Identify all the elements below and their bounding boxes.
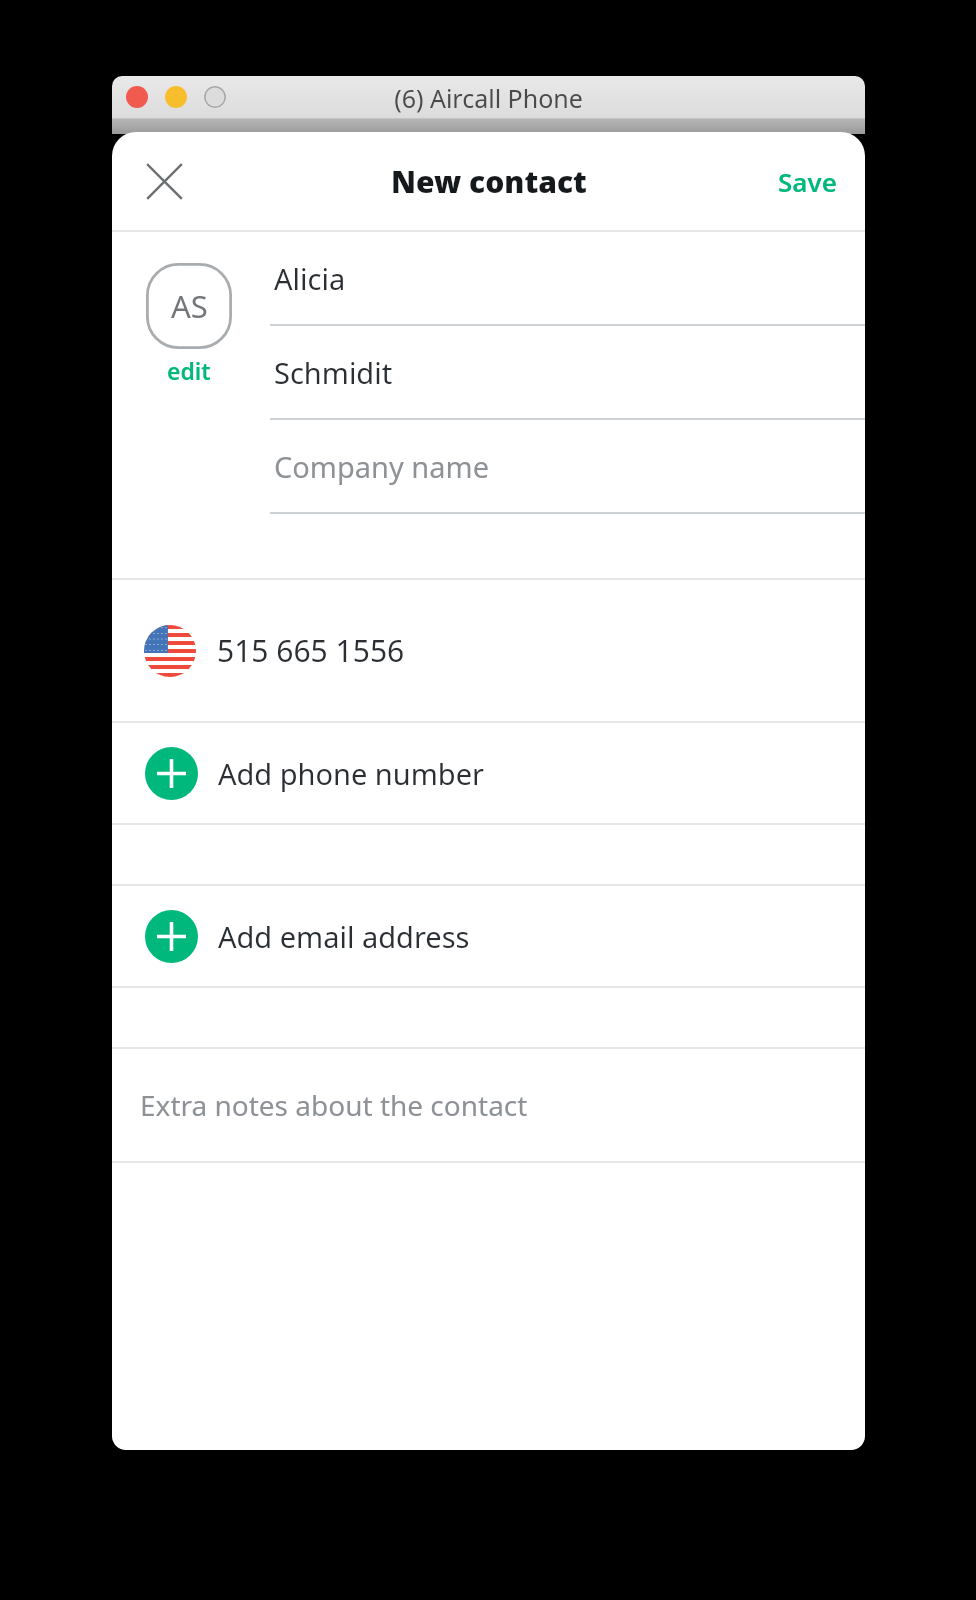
button[interactable]: Close window: [126, 86, 148, 108]
button[interactable]: Extra notes about the contact: [112, 1049, 865, 1161]
button[interactable]: Maximize window: [204, 86, 226, 108]
button[interactable]: 515 665 1556: [112, 580, 865, 721]
staticText: Add email address: [218, 917, 470, 956]
button[interactable]: Close: [136, 153, 192, 209]
staticText: Save: [778, 164, 837, 199]
button[interactable]: Add phone number: [112, 723, 865, 823]
button[interactable]: AS: [146, 263, 232, 386]
button[interactable]: Company name: [270, 420, 865, 514]
staticText: New contact: [391, 161, 587, 202]
button[interactable]: Alicia: [270, 232, 865, 326]
staticText: (6) Aircall Phone: [394, 81, 583, 115]
staticText: Company name: [274, 447, 490, 486]
staticText: edit: [167, 355, 211, 386]
staticText: Schmidit: [274, 353, 393, 392]
button[interactable]: Save: [778, 164, 837, 199]
button[interactable]: Minimize window: [165, 86, 187, 108]
button[interactable]: Schmidit: [270, 326, 865, 420]
button[interactable]: Add email address: [112, 886, 865, 986]
staticText: AS: [171, 285, 208, 327]
staticText: 515 665 1556: [217, 630, 405, 671]
staticText: Extra notes about the contact: [140, 1086, 528, 1124]
staticText: Alicia: [274, 259, 346, 298]
staticText: Add phone number: [218, 754, 484, 793]
